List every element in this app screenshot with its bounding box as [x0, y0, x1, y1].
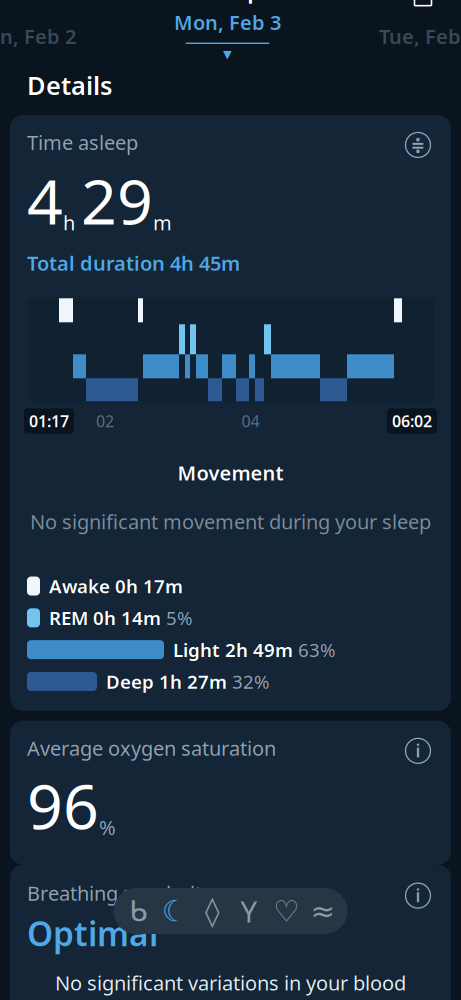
- staticText: REM 0h 14m: [49, 605, 161, 630]
- staticText: Υ: [240, 891, 257, 930]
- button[interactable]: About oxygen saturation: [402, 735, 434, 767]
- staticText: 02: [96, 410, 114, 431]
- staticText: ♡: [273, 894, 299, 928]
- staticText: Movement: [177, 460, 283, 486]
- staticText: Sleep: [199, 0, 262, 4]
- staticText: n, Feb 2: [0, 23, 76, 50]
- staticText: 4: [27, 158, 63, 242]
- staticText: Total duration 4h 45m: [27, 250, 240, 276]
- staticText: h: [63, 209, 75, 236]
- staticText: ᑲ: [129, 894, 147, 928]
- staticText: 29: [81, 158, 153, 242]
- staticText: i: [415, 739, 420, 762]
- staticText: Details: [27, 68, 112, 102]
- staticText: ☾: [162, 894, 188, 928]
- staticText: Average oxygen saturation: [27, 735, 276, 761]
- staticText: ≈: [310, 894, 335, 928]
- staticText: Mon, Feb 3: [174, 9, 281, 36]
- staticText: 63%: [298, 637, 336, 662]
- button[interactable]: Sleep: [156, 895, 193, 927]
- button[interactable]: Body: [119, 895, 156, 927]
- button[interactable]: Mon, Feb 3: [174, 13, 281, 59]
- button[interactable]: Adjust sleep data: [402, 129, 434, 161]
- button[interactable]: Heart: [267, 895, 304, 927]
- button[interactable]: About breathing regularity: [402, 880, 434, 912]
- staticText: m: [153, 209, 172, 236]
- staticText: i: [415, 884, 420, 907]
- staticText: Tue, Feb: [379, 23, 461, 50]
- button[interactable]: Share: [401, 0, 445, 10]
- button[interactable]: n, Feb 2: [0, 16, 76, 56]
- staticText: %: [99, 814, 116, 841]
- staticText: ◊: [205, 894, 219, 928]
- staticText: 04: [241, 410, 259, 431]
- staticText: Awake 0h 17m: [49, 574, 183, 598]
- button[interactable]: Activity: [193, 895, 230, 927]
- staticText: Light 2h 49m: [173, 637, 293, 662]
- button[interactable]: Trends: [304, 895, 341, 927]
- staticText: 06:02: [392, 410, 432, 431]
- staticText: ▾: [223, 44, 232, 64]
- button[interactable]: Mind: [230, 895, 267, 927]
- staticText: No significant variations in your blood …: [55, 969, 406, 1000]
- staticText: 32%: [232, 669, 270, 694]
- staticText: ≑: [410, 135, 425, 155]
- staticText: 01:17: [29, 410, 69, 431]
- staticText: Breathing regularity: [27, 880, 212, 906]
- staticText: Time asleep: [27, 129, 138, 156]
- staticText: Deep 1h 27m: [106, 669, 227, 694]
- staticText: Optimal: [27, 911, 158, 955]
- staticText: 5%: [166, 605, 193, 630]
- staticText: No significant movement during your slee…: [30, 508, 431, 535]
- button[interactable]: Tue, Feb: [379, 16, 461, 56]
- staticText: 96: [27, 763, 99, 847]
